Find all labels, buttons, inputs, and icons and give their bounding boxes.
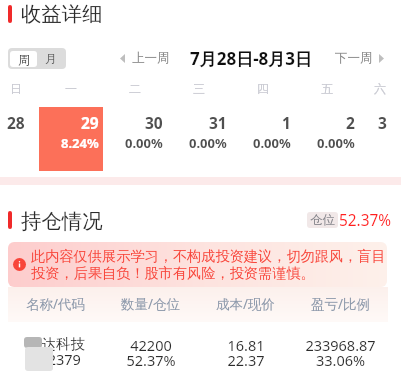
staticText: 数量/仓位 [121,295,181,313]
staticText: 二 [129,81,141,96]
button[interactable]: 3 [359,107,401,171]
staticText: 1 [282,112,291,133]
staticText: 28 [7,112,25,133]
staticText: 五 [321,81,333,96]
staticText: 0.00% [125,134,163,152]
staticText: 30 [145,112,163,133]
button[interactable]: 31 [167,107,231,171]
button[interactable]: 盈亏/比例 [293,286,388,321]
staticText: 31 [209,112,227,133]
staticText: 三 [193,81,205,96]
staticText: 42200 52.37% [126,335,176,370]
button[interactable]: 信达科技 002379 [8,335,103,369]
staticText: 周 [18,52,30,67]
staticText: 下一周 [335,50,373,66]
button[interactable]: 30 [103,107,167,171]
staticText: 0.00% [253,134,291,152]
button[interactable]: 数量/仓位 [103,286,198,321]
staticText: 月 [45,51,57,66]
staticText: 成本/现价 [216,295,276,313]
staticText: 信达科技 002379 [27,335,85,369]
staticText: 六 [374,81,386,96]
button[interactable]: 2 [295,107,359,171]
button[interactable]: 上一周 [120,50,170,66]
staticText: 收益详细 [21,1,103,27]
staticText: 仓位 [310,212,335,228]
button[interactable]: 周 [10,51,37,67]
button[interactable]: 下一周 [335,50,384,66]
staticText: 16.81 22.37 [227,335,265,370]
button[interactable]: 月 [37,48,64,69]
staticText: 上一周 [132,50,170,66]
button[interactable]: 28 [0,107,39,171]
staticText: 0.00% [317,134,355,152]
staticText: 此内容仅供展示学习，不构成投资建议，切勿跟风，盲目 投资，后果自负！股市有风险，… [31,247,386,282]
button[interactable]: 29 [39,107,103,171]
button[interactable]: 持仓情况 [0,208,103,232]
button[interactable]: 16.81 22.37 [198,335,293,370]
staticText: 29 [81,112,99,133]
button[interactable]: 1 [231,107,295,171]
button[interactable]: 成本/现价 [198,286,293,321]
other: 提示 [13,258,26,271]
staticText: 2 [346,112,355,133]
staticText: 0.00% [189,134,227,152]
staticText: 52.37% [339,210,392,231]
button[interactable]: 42200 52.37% [103,335,198,370]
staticText: 名称/代码 [26,295,86,313]
staticText: 盈亏/比例 [311,295,371,313]
staticText: 233968.87 33.06% [305,335,376,370]
staticText: 一 [65,81,77,96]
button[interactable]: 名称/代码 [8,286,103,321]
staticText: 日 [10,81,22,96]
button[interactable]: 233968.87 33.06% [293,335,388,370]
staticText: 四 [257,81,269,96]
staticText: 3 [378,112,387,133]
staticText: 持仓情况 [21,208,103,232]
staticText: 8.24% [61,134,99,152]
staticText: 7月28日-8月3日 [190,47,313,69]
button[interactable]: 收益详细 [0,0,103,28]
